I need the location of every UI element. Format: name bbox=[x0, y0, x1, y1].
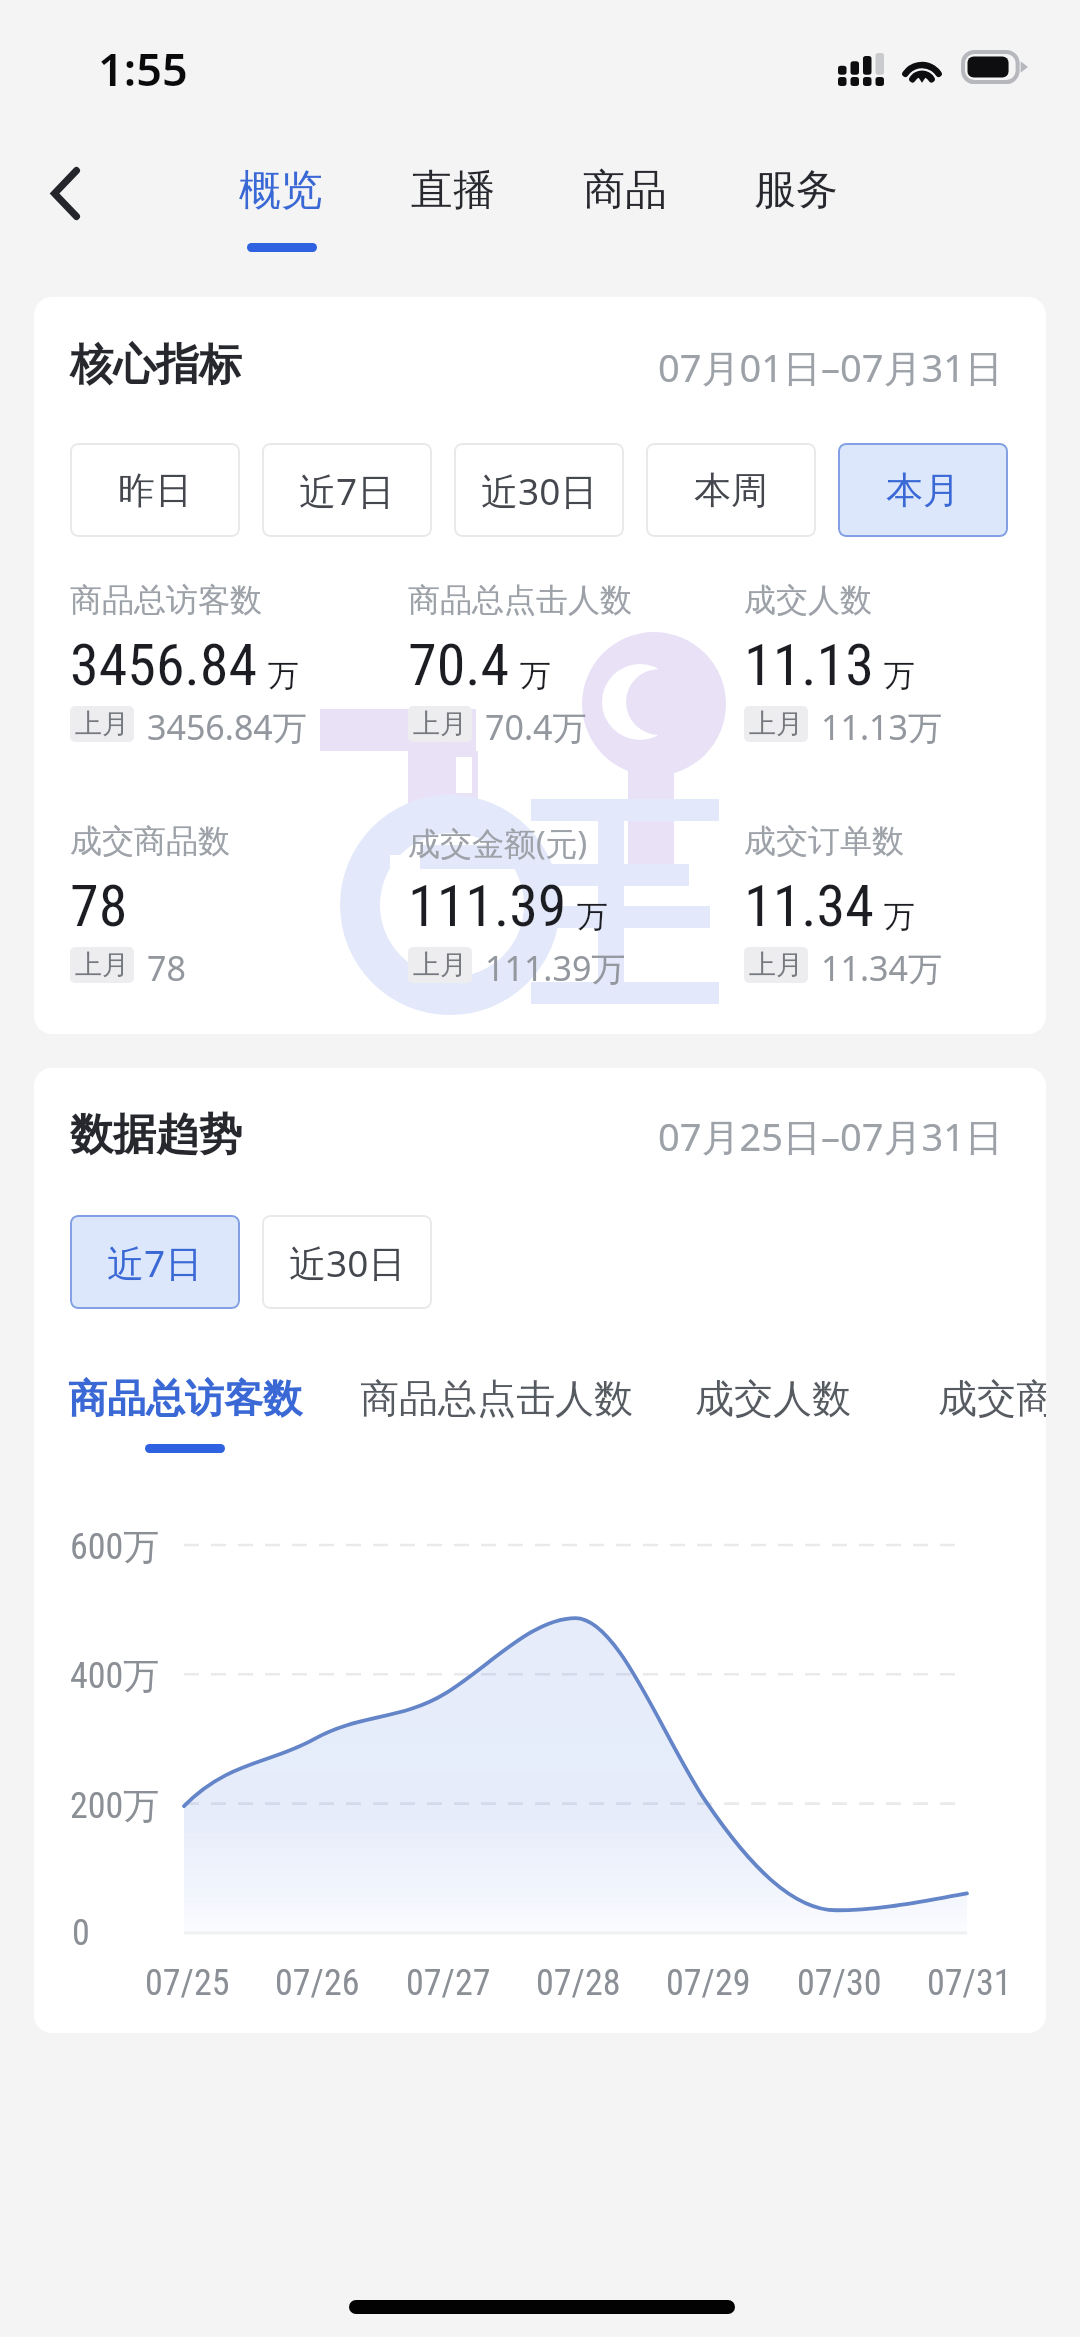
staticText: 商品 bbox=[583, 164, 667, 217]
staticText: 07/29 bbox=[666, 1962, 751, 2004]
staticText: 200万 bbox=[70, 1783, 160, 1828]
staticText: 成交金额(元) bbox=[408, 821, 588, 865]
staticText: 直播 bbox=[411, 164, 495, 217]
staticText: 万 bbox=[884, 656, 915, 695]
button[interactable]: Back bbox=[16, 144, 114, 242]
staticText: 上月 bbox=[75, 707, 129, 741]
button[interactable]: 昨日 bbox=[70, 443, 240, 537]
staticText: 昨日 bbox=[118, 467, 192, 514]
staticText: 万 bbox=[268, 656, 299, 695]
staticText: 商品总点击人数 bbox=[360, 1374, 633, 1423]
staticText: 07月01日–07月31日 bbox=[658, 341, 1003, 393]
staticText: 本周 bbox=[694, 467, 768, 514]
staticText: 3456.84 bbox=[70, 631, 258, 699]
staticText: 成交订单数 bbox=[744, 821, 904, 861]
button[interactable]: 近30日 bbox=[454, 443, 624, 537]
staticText: 78 bbox=[147, 945, 186, 991]
staticText: 07月25日–07月31日 bbox=[658, 1110, 1003, 1162]
button[interactable]: 本月 bbox=[838, 443, 1008, 537]
staticText: 70.4万 bbox=[485, 704, 587, 750]
staticText: 万 bbox=[884, 897, 915, 936]
button[interactable]: 直播 bbox=[385, 150, 521, 264]
staticText: 07/25 bbox=[145, 1962, 230, 2004]
button[interactable]: 成交人数 bbox=[695, 1374, 851, 1423]
staticText: 07/31 bbox=[927, 1962, 1012, 2004]
button[interactable]: 本周 bbox=[646, 443, 816, 537]
staticText: 成交商品数 bbox=[70, 821, 230, 861]
staticText: 0 bbox=[72, 1912, 90, 1954]
staticText: 成交人数 bbox=[744, 580, 872, 620]
staticText: 上月 bbox=[413, 707, 467, 741]
button[interactable]: 近7日 bbox=[70, 1215, 240, 1309]
staticText: 商品总点击人数 bbox=[408, 580, 632, 620]
staticText: 商品总访客数 bbox=[70, 580, 262, 620]
button[interactable]: 商品总访客数 bbox=[68, 1374, 302, 1423]
button[interactable]: 服务 bbox=[728, 150, 864, 264]
staticText: 3456.84万 bbox=[147, 704, 307, 750]
staticText: 近7日 bbox=[299, 465, 395, 516]
staticText: 商品总访客数 bbox=[68, 1374, 302, 1423]
staticText: 11.34万 bbox=[821, 945, 942, 991]
button[interactable]: 近30日 bbox=[262, 1215, 432, 1309]
button[interactable]: 成交商品数 bbox=[938, 1374, 1046, 1423]
button[interactable]: 商品 bbox=[557, 150, 693, 264]
staticText: 600万 bbox=[70, 1524, 160, 1569]
staticText: 成交商品数 bbox=[938, 1374, 1046, 1423]
staticText: 1:55 bbox=[98, 38, 188, 99]
button[interactable]: 近7日 bbox=[262, 443, 432, 537]
staticText: 11.34 bbox=[744, 872, 874, 940]
staticText: 78 bbox=[70, 872, 128, 940]
staticText: 上月 bbox=[749, 707, 803, 741]
staticText: 上月 bbox=[75, 948, 129, 982]
staticText: 70.4 bbox=[408, 631, 510, 699]
staticText: 数据趋势 bbox=[70, 1108, 242, 1162]
staticText: 成交人数 bbox=[695, 1374, 851, 1423]
staticText: 服务 bbox=[754, 164, 838, 217]
staticText: 07/26 bbox=[275, 1962, 360, 2004]
staticText: 近30日 bbox=[289, 1237, 406, 1288]
staticText: 万 bbox=[577, 897, 608, 936]
button[interactable]: 概览 bbox=[213, 150, 349, 264]
staticText: 11.13万 bbox=[821, 704, 942, 750]
staticText: 上月 bbox=[413, 948, 467, 982]
staticText: 11.13 bbox=[744, 631, 874, 699]
staticText: 近30日 bbox=[481, 465, 598, 516]
staticText: 核心指标 bbox=[70, 338, 242, 392]
staticText: 本月 bbox=[886, 467, 960, 514]
staticText: 111.39万 bbox=[485, 945, 626, 991]
staticText: 万 bbox=[520, 656, 551, 695]
staticText: 概览 bbox=[239, 164, 323, 217]
button[interactable]: 商品总点击人数 bbox=[360, 1374, 633, 1423]
staticText: 上月 bbox=[749, 948, 803, 982]
staticText: 400万 bbox=[70, 1653, 160, 1698]
staticText: 07/27 bbox=[406, 1962, 491, 2004]
staticText: 07/28 bbox=[536, 1962, 621, 2004]
staticText: 07/30 bbox=[797, 1962, 882, 2004]
staticText: 111.39 bbox=[408, 872, 567, 940]
staticText: 近7日 bbox=[107, 1237, 203, 1288]
